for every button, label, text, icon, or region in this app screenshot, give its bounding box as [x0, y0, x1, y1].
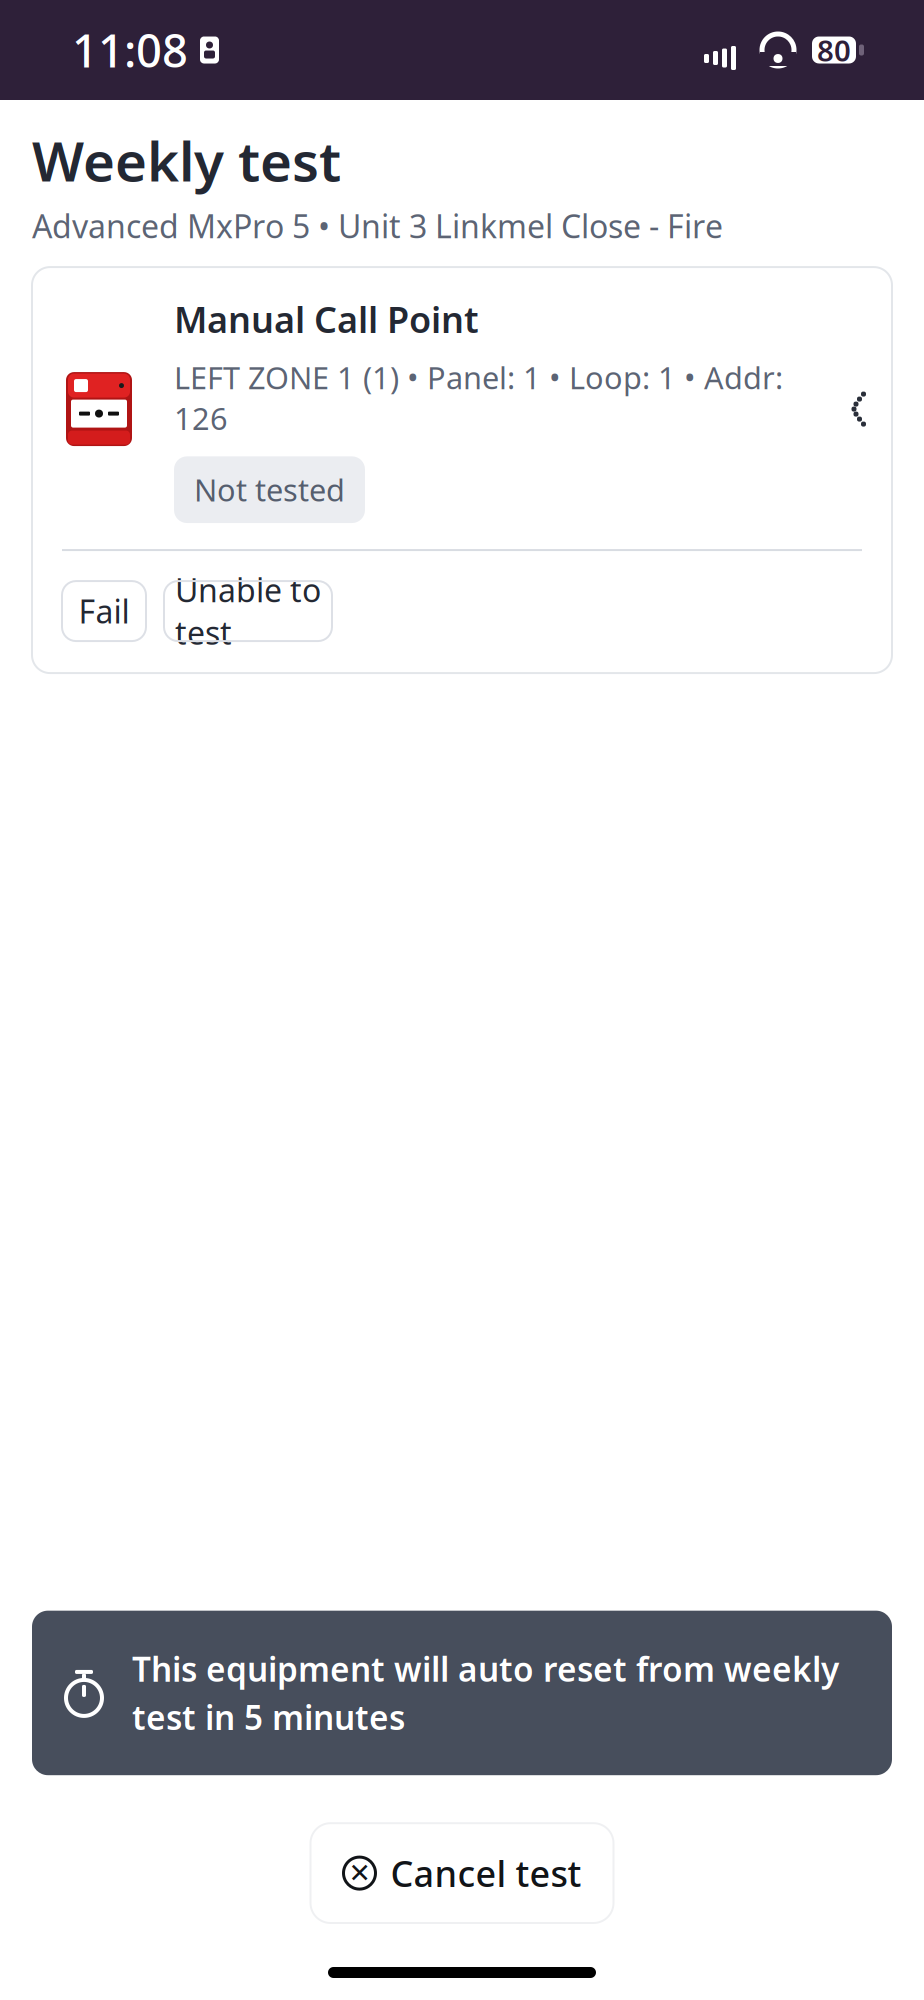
staticText: Advanced MxPro 5 • Unit 3 Linkmel Close … — [32, 205, 723, 247]
staticText: Weekly test — [32, 124, 341, 197]
staticText: This equipment will auto reset from week… — [132, 1647, 839, 1691]
staticText: LEFT ZONE 1 (1) • Panel: 1 • Loop: 1 • A… — [174, 357, 783, 438]
staticText: test in 5 minutes — [132, 1695, 405, 1739]
button[interactable]: ✕ — [310, 1823, 613, 1923]
staticText: 11:08 — [72, 20, 188, 80]
staticText: Manual Call Point — [174, 295, 479, 343]
button[interactable]: Fail — [62, 581, 146, 641]
button[interactable]: Manual Call Point — [32, 267, 892, 549]
staticText: Not tested — [194, 469, 345, 510]
staticText: 80 — [817, 30, 851, 69]
staticText: Unable to test — [175, 569, 321, 654]
staticText: Cancel test — [390, 1849, 581, 1897]
button[interactable]: Unable to test — [164, 581, 332, 641]
staticText: Fail — [78, 590, 129, 632]
staticText: ✕ — [348, 1858, 370, 1888]
